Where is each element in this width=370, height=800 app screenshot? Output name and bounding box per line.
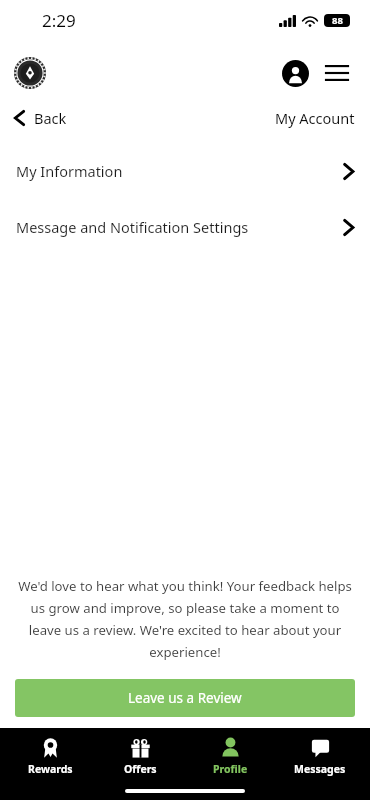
button[interactable]: My Information	[0, 156, 370, 186]
button[interactable]: Menu	[320, 56, 354, 90]
button[interactable]: Message and Notification Settings	[0, 212, 370, 242]
button[interactable]: Back	[0, 104, 77, 132]
staticText: My Information	[16, 161, 343, 181]
staticText: Leave us a Review	[128, 689, 242, 707]
button[interactable]: Rewards	[10, 735, 90, 778]
button[interactable]: Leave us a Review	[15, 679, 355, 717]
button[interactable]: Messages	[280, 735, 360, 778]
staticText: Message and Notification Settings	[16, 217, 343, 237]
staticText: My Account	[275, 108, 355, 128]
staticText: Offers	[124, 762, 157, 776]
button[interactable]: Account	[278, 56, 312, 90]
button[interactable]: Logo	[14, 57, 46, 89]
staticText: Profile	[213, 762, 248, 776]
button[interactable]: Offers	[100, 735, 180, 778]
staticText: Rewards	[28, 762, 73, 776]
button[interactable]: Profile	[190, 735, 270, 778]
staticText: 2:29	[42, 9, 76, 32]
staticText: Back	[34, 108, 67, 128]
staticText: We'd love to hear what you think! Your f…	[17, 577, 353, 661]
staticText: 88	[332, 14, 343, 27]
staticText: Messages	[294, 762, 346, 776]
